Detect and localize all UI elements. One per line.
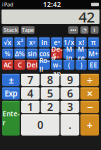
- staticText: x!: [78, 38, 84, 47]
- button[interactable]: 8: [41, 74, 59, 86]
- staticText: Deg: [51, 45, 62, 62]
- staticText: (: [68, 60, 70, 69]
- staticText: 3: [67, 100, 73, 114]
- staticText: 6: [67, 86, 73, 101]
- button[interactable]: M+: [88, 49, 99, 59]
- button[interactable]: .: [61, 114, 79, 136]
- button[interactable]: Deg: [51, 49, 62, 59]
- staticText: 1/x: [63, 38, 74, 47]
- button[interactable]: Stack: [2, 26, 19, 34]
- staticText: ×: [87, 86, 93, 101]
- button[interactable]: +: [80, 114, 99, 136]
- button[interactable]: (: [63, 60, 74, 70]
- button[interactable]: Tape: [21, 26, 35, 34]
- staticText: 0: [37, 118, 43, 132]
- staticText: Δ%: [15, 49, 25, 58]
- button[interactable]: 3: [61, 101, 79, 113]
- staticText: 9: [67, 73, 73, 87]
- staticText: .: [68, 118, 71, 132]
- button[interactable]: π: [88, 37, 99, 47]
- staticText: 1: [27, 100, 33, 114]
- button[interactable]: Info: [91, 26, 99, 34]
- staticText: M+: [88, 49, 98, 58]
- staticText: Exp: [4, 88, 17, 99]
- staticText: 5: [47, 86, 53, 101]
- button[interactable]: cos: [39, 49, 50, 59]
- staticText: %: [4, 49, 10, 58]
- button[interactable]: √x: [2, 37, 13, 47]
- button[interactable]: More: [68, 26, 78, 34]
- staticText: ÷: [87, 73, 93, 87]
- button[interactable]: %: [2, 49, 13, 59]
- button[interactable]: 5: [41, 87, 59, 100]
- button[interactable]: 6: [61, 87, 79, 100]
- staticText: 7: [27, 73, 33, 87]
- button[interactable]: 1/x: [63, 37, 74, 47]
- staticText: +: [87, 118, 93, 132]
- staticText: √x: [3, 38, 11, 47]
- button[interactable]: Swap: [51, 60, 62, 70]
- button[interactable]: 1: [21, 101, 40, 113]
- staticText: M in: [66, 45, 72, 62]
- staticText: −: [87, 100, 93, 114]
- button[interactable]: sin: [26, 49, 38, 59]
- staticText: 42: [78, 7, 94, 26]
- button[interactable]: C: [14, 60, 25, 70]
- staticText: sin: [28, 49, 37, 58]
- button[interactable]: AC: [2, 60, 13, 70]
- button[interactable]: Roll: [39, 60, 50, 70]
- button[interactable]: Del: [26, 60, 38, 70]
- button[interactable]: x!: [76, 37, 87, 47]
- button[interactable]: M re: [76, 49, 87, 59]
- staticText: x²: [17, 38, 23, 47]
- button[interactable]: EE: [88, 60, 99, 70]
- staticText: M re: [78, 45, 85, 62]
- button[interactable]: Δ%: [14, 49, 25, 59]
- staticText: 2: [47, 100, 53, 114]
- button[interactable]: x²: [14, 37, 25, 47]
- button[interactable]: ÷: [80, 74, 99, 86]
- staticText: iPad: [2, 1, 13, 8]
- button[interactable]: −: [80, 101, 99, 113]
- staticText: •••: [70, 26, 76, 34]
- staticText: C: [18, 60, 22, 69]
- staticText: 12:42: [43, 0, 61, 9]
- staticText: EE: [89, 60, 97, 69]
- button[interactable]: ±: [2, 74, 20, 86]
- staticText: Stack: [4, 26, 18, 34]
- staticText: ◔: [82, 27, 87, 33]
- button[interactable]: 7: [21, 74, 40, 86]
- button[interactable]: Enter: [2, 101, 20, 136]
- staticText: 4: [27, 86, 33, 101]
- button[interactable]: eˣ: [51, 37, 62, 47]
- staticText: AC: [3, 60, 11, 69]
- button[interactable]: 2: [41, 101, 59, 113]
- button[interactable]: ): [76, 60, 87, 70]
- button[interactable]: ln: [39, 37, 50, 47]
- staticText: Roll: [39, 56, 49, 74]
- staticText: cos: [39, 49, 49, 58]
- button[interactable]: 0: [21, 114, 59, 136]
- button[interactable]: Exp: [2, 87, 20, 100]
- staticText: eˣ: [54, 38, 60, 47]
- button[interactable]: xʸ: [26, 37, 38, 47]
- staticText: Tape: [22, 26, 34, 34]
- staticText: π: [91, 38, 96, 47]
- staticText: i: [94, 26, 96, 34]
- staticText: Swap: [53, 51, 61, 78]
- button[interactable]: M in: [63, 49, 74, 59]
- staticText: xʸ: [29, 38, 35, 47]
- button[interactable]: 9: [61, 74, 79, 86]
- staticText: ±: [8, 74, 13, 86]
- button[interactable]: ×: [80, 87, 99, 100]
- staticText: ln: [41, 38, 47, 47]
- staticText: ): [80, 60, 82, 69]
- button[interactable]: 4: [21, 87, 40, 100]
- staticText: Enter: [2, 109, 19, 127]
- staticText: 8: [47, 73, 53, 87]
- staticText: Del: [27, 60, 38, 69]
- button[interactable]: History: [80, 26, 88, 34]
